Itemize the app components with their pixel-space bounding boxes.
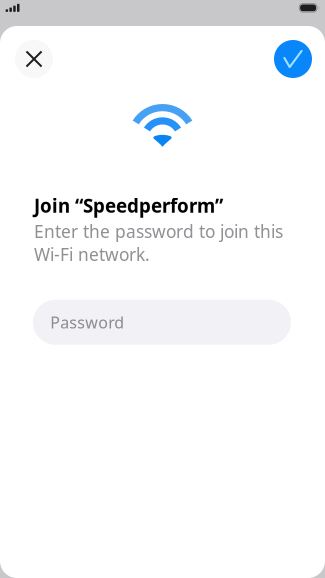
staticText: Enter the password to join this Wi-Fi ne… bbox=[34, 220, 283, 266]
staticText: Join “Speedperform” bbox=[34, 193, 223, 218]
button[interactable]: Join network bbox=[274, 40, 312, 78]
staticText: Password bbox=[50, 312, 124, 333]
button[interactable]: Close bbox=[15, 40, 53, 78]
button[interactable]: Password bbox=[33, 300, 291, 345]
